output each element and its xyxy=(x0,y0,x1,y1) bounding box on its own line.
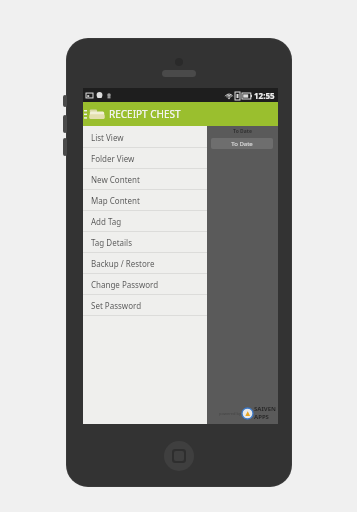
staticText: Set Password xyxy=(91,300,142,311)
button[interactable]: Set Password xyxy=(83,295,207,315)
staticText: powered by xyxy=(219,411,241,416)
staticText: APPS xyxy=(254,413,269,421)
button[interactable]: Change Password xyxy=(83,274,207,294)
button[interactable]: Folder View xyxy=(83,148,207,168)
button[interactable]: Open navigation drawer xyxy=(84,110,87,119)
staticText: 12:55 xyxy=(254,90,275,101)
button[interactable]: Tag Details xyxy=(83,232,207,252)
staticText: Change Password xyxy=(91,279,159,290)
button[interactable]: Map Content xyxy=(83,190,207,210)
staticText: To Date xyxy=(233,128,252,135)
staticText: RECEIPT CHEST xyxy=(109,107,181,121)
button[interactable]: Backup / Restore xyxy=(83,253,207,273)
button[interactable]: To Date xyxy=(211,138,273,149)
staticText: Folder View xyxy=(91,153,135,164)
staticText: To Date xyxy=(231,140,253,148)
staticText: New Content xyxy=(91,174,140,185)
staticText: Add Tag xyxy=(91,216,122,227)
staticText: Map Content xyxy=(91,195,140,206)
staticText: Backup / Restore xyxy=(91,258,155,269)
button[interactable]: New Content xyxy=(83,169,207,189)
button[interactable]: List View xyxy=(83,127,207,147)
staticText: SAIVEN xyxy=(254,405,276,413)
staticText: Tag Details xyxy=(91,237,132,248)
button[interactable]: Add Tag xyxy=(83,211,207,231)
staticText: List View xyxy=(91,132,124,143)
